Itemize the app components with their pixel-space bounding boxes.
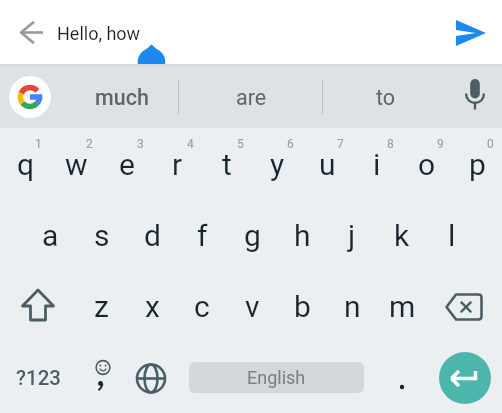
button[interactable]: m (377, 271, 427, 342)
staticText: 9 (437, 137, 444, 151)
staticText: to (376, 85, 396, 110)
staticText: h (294, 218, 311, 253)
button[interactable]: v (227, 271, 277, 342)
button[interactable] (76, 342, 126, 413)
staticText: l (448, 218, 456, 253)
button[interactable]: g (227, 200, 277, 271)
button[interactable]: e (102, 128, 152, 200)
button[interactable]: q (0, 128, 51, 200)
button[interactable]: p (452, 128, 502, 200)
button[interactable]: d (127, 200, 177, 271)
staticText: o (418, 147, 436, 182)
staticText: t (222, 147, 232, 182)
staticText: 6 (287, 137, 294, 151)
staticText: 8 (387, 137, 394, 151)
button[interactable]: s (76, 200, 127, 271)
button[interactable]: y (252, 128, 302, 200)
button[interactable]: b (277, 271, 327, 342)
staticText: 7 (337, 137, 344, 151)
button[interactable] (9, 76, 51, 118)
staticText: much (95, 85, 149, 110)
staticText: w (65, 147, 88, 182)
staticText: p (469, 147, 486, 182)
button[interactable] (9, 13, 49, 53)
button[interactable] (448, 66, 502, 128)
button[interactable]: t (202, 128, 252, 200)
button[interactable]: r (152, 128, 202, 200)
staticText: 4 (187, 137, 194, 151)
button[interactable]: o (402, 128, 452, 200)
button[interactable]: c (177, 271, 227, 342)
button[interactable]: much (51, 66, 178, 128)
staticText: e (119, 147, 135, 182)
staticText: c (194, 289, 210, 324)
staticText: 0 (487, 137, 494, 151)
button[interactable]: to (323, 66, 448, 128)
button[interactable] (0, 271, 76, 342)
button[interactable]: Hello, how (57, 23, 141, 44)
staticText: y (270, 147, 285, 182)
staticText: 2 (86, 137, 93, 151)
staticText: j (348, 218, 356, 253)
button[interactable]: i (352, 128, 402, 200)
staticText: a (42, 218, 59, 253)
staticText: z (94, 289, 109, 324)
button[interactable]: n (327, 271, 377, 342)
button[interactable]: a (25, 200, 76, 271)
staticText: g (244, 218, 261, 253)
button[interactable]: ?123 (0, 342, 76, 413)
button[interactable]: h (277, 200, 327, 271)
staticText: i (373, 147, 381, 182)
button[interactable] (439, 352, 491, 404)
staticText: k (394, 218, 410, 253)
staticText: q (17, 147, 35, 182)
button[interactable] (455, 17, 487, 49)
staticText: m (389, 289, 416, 324)
button[interactable] (126, 342, 176, 413)
button[interactable] (377, 342, 427, 413)
staticText: 3 (137, 137, 144, 151)
staticText: 1 (35, 137, 42, 151)
button[interactable]: l (427, 200, 477, 271)
button[interactable]: z (76, 271, 127, 342)
staticText: Hello, how (57, 23, 141, 44)
staticText: 5 (237, 137, 244, 151)
button[interactable] (427, 271, 502, 342)
staticText: b (294, 289, 311, 324)
staticText: u (319, 147, 336, 182)
staticText: are (236, 85, 267, 110)
button[interactable]: k (377, 200, 427, 271)
button[interactable]: x (127, 271, 177, 342)
staticText: d (144, 218, 161, 253)
staticText: f (197, 218, 208, 253)
staticText: x (145, 289, 160, 324)
button[interactable]: j (327, 200, 377, 271)
button[interactable]: u (302, 128, 352, 200)
staticText: n (344, 289, 361, 324)
button[interactable]: w (51, 128, 102, 200)
button[interactable]: are (179, 66, 322, 128)
staticText: r (172, 147, 183, 182)
button[interactable]: f (177, 200, 227, 271)
staticText: v (245, 289, 260, 324)
button[interactable]: English (189, 362, 364, 393)
staticText: s (94, 218, 110, 253)
staticText: ?123 (16, 366, 61, 390)
staticText: English (247, 367, 306, 388)
